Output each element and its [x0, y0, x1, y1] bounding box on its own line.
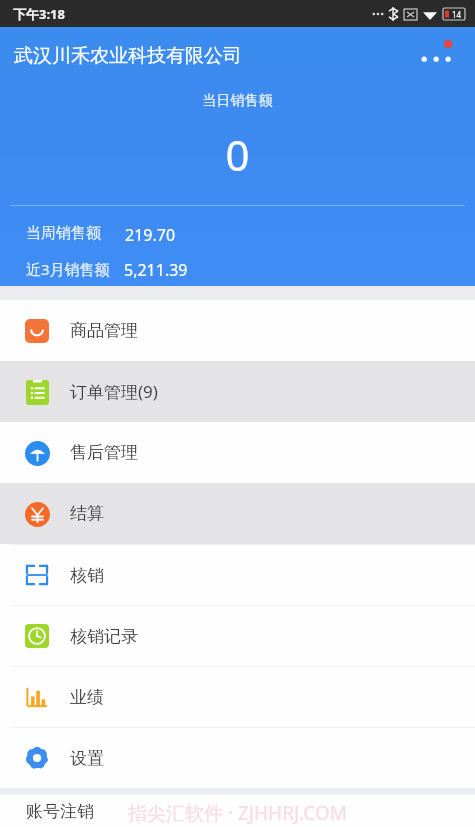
- button[interactable]: 设置: [0, 727, 475, 788]
- button[interactable]: 账号注销: [0, 795, 475, 827]
- staticText: 5,211.39: [124, 259, 188, 281]
- staticText: 售后管理: [70, 442, 138, 463]
- staticText: 当周销售额: [26, 224, 101, 243]
- button[interactable]: 结算: [0, 483, 475, 544]
- staticText: 核销记录: [70, 626, 138, 647]
- staticText: 219.70: [125, 224, 176, 246]
- staticText: 14: [452, 9, 462, 20]
- button[interactable]: 业绩: [0, 666, 475, 727]
- staticText: 当日销售额: [0, 92, 475, 110]
- staticText: 近3月销售额: [26, 259, 110, 279]
- staticText: 设置: [70, 748, 104, 769]
- staticText: 下午3:18: [13, 5, 65, 23]
- staticText: 核销: [70, 565, 104, 586]
- button[interactable]: 核销: [0, 544, 475, 605]
- staticText: 武汉川禾农业科技有限公司: [14, 44, 242, 68]
- staticText: 业绩: [70, 687, 104, 708]
- button[interactable]: 核销记录: [0, 605, 475, 666]
- staticText: 0: [0, 126, 475, 183]
- button[interactable]: 订单管理(9): [0, 361, 475, 422]
- staticText: 账号注销: [26, 801, 94, 822]
- button[interactable]: More options: [415, 36, 461, 76]
- staticText: 指尖汇软件 · ZJHHRJ.COM: [128, 800, 348, 826]
- staticText: 结算: [70, 503, 104, 524]
- button[interactable]: 售后管理: [0, 422, 475, 483]
- staticText: 订单管理(9): [70, 380, 158, 403]
- button[interactable]: 商品管理: [0, 300, 475, 361]
- staticText: 商品管理: [70, 320, 138, 341]
